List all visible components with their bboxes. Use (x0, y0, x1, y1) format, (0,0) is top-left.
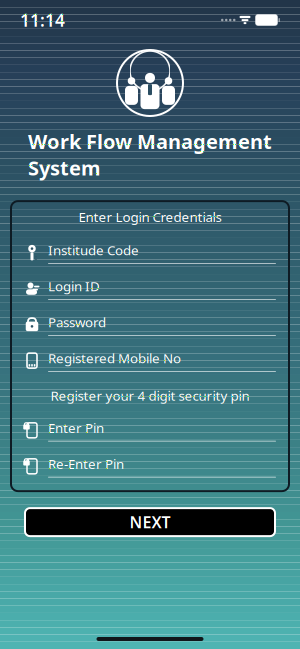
button[interactable]: Enter Pin (23, 417, 277, 443)
staticText: Register your 4 digit security pin (50, 387, 249, 404)
staticText: Password (48, 313, 106, 331)
button[interactable]: Login ID (23, 276, 277, 302)
staticText: 11:14 (20, 8, 65, 31)
staticText: NEXT (129, 511, 170, 533)
staticText: Re-Enter Pin (48, 455, 124, 473)
staticText: Enter Login Credentials (78, 208, 221, 226)
button[interactable]: NEXT (24, 507, 276, 537)
staticText: Work Flow Management System (28, 128, 272, 181)
button[interactable]: Registered Mobile No (23, 348, 277, 374)
staticText: Registered Mobile No (48, 349, 181, 367)
button[interactable]: Institude Code (23, 240, 277, 266)
staticText: Institude Code (48, 241, 139, 259)
staticText: Login ID (48, 277, 100, 295)
button[interactable]: Password (23, 312, 277, 338)
button[interactable]: Re-Enter Pin (23, 453, 277, 479)
staticText: Enter Pin (48, 419, 104, 437)
